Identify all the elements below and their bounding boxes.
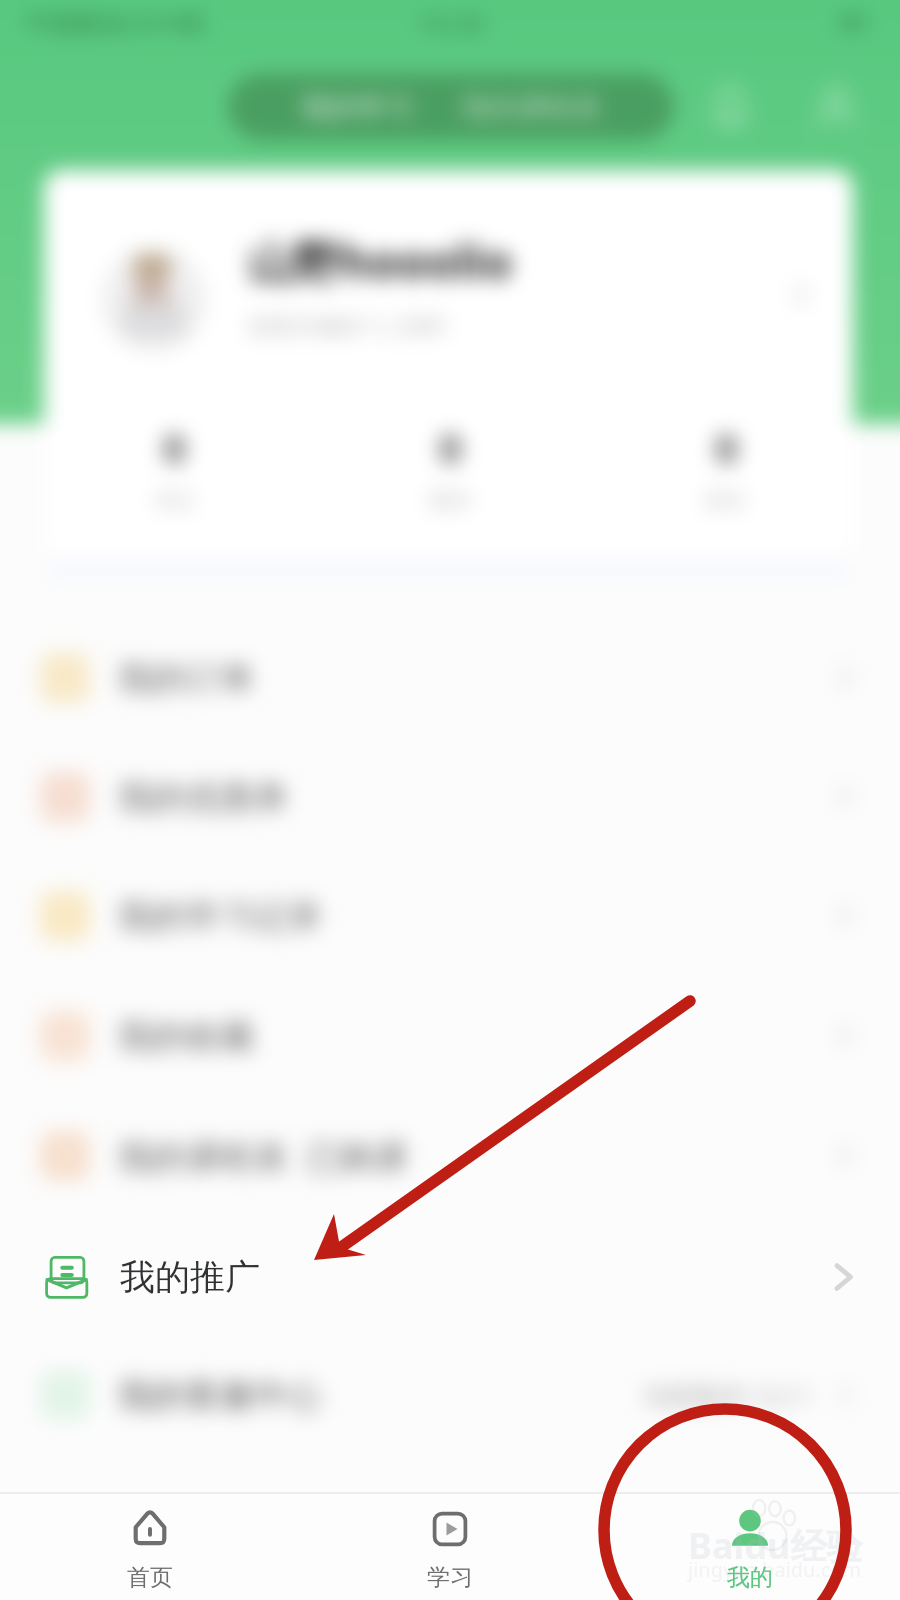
staticText: 我的课程表 — [461, 90, 601, 125]
button[interactable]: 首页 — [0, 1494, 300, 1600]
button[interactable]: 学习 — [300, 1494, 600, 1600]
staticText: 0 — [439, 420, 462, 474]
staticText: 我的订单 — [118, 657, 254, 700]
staticText: 学习 — [427, 1563, 473, 1592]
staticText: 0 — [163, 420, 186, 474]
staticText: jingyan.baidu.com — [688, 1556, 862, 1583]
staticText: 我的推广 — [120, 1255, 260, 1299]
staticText: 首页 — [127, 1563, 173, 1592]
staticText: 山野hooolio — [248, 230, 513, 293]
button[interactable]: 我的推广 — [0, 1229, 900, 1325]
staticText: 0 — [715, 420, 738, 474]
staticText: 我的 — [727, 1563, 773, 1592]
staticText: 我的学习记录 — [118, 895, 322, 938]
staticText: 当前版本 3.2.1 — [642, 1377, 812, 1413]
staticText: 我的优惠券 — [118, 776, 288, 819]
staticText: 我的学习 — [301, 90, 413, 125]
button[interactable]: 我的 — [600, 1494, 900, 1600]
staticText: 我的客服中心 — [118, 1374, 322, 1417]
staticText: 我的课程表 已购课 — [118, 1133, 408, 1179]
staticText: 中国移动 ıl ıl 4G — [26, 5, 205, 39]
staticText: 查看并编辑个人资料 — [248, 313, 446, 341]
staticText: Baidu经验 — [688, 1521, 863, 1570]
staticText: 我的收藏 — [118, 1015, 254, 1058]
